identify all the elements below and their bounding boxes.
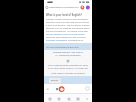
staticText: What is your level of English? <box>46 13 82 17</box>
staticText: Congratulations! Your level is C1 Advanc… <box>52 51 84 57</box>
button[interactable]: Share <box>55 95 62 102</box>
button[interactable]: Restart <box>49 78 61 83</box>
button[interactable]: More options <box>83 95 90 102</box>
button[interactable]: Tabs <box>74 95 81 102</box>
staticText: The test contains grammar and vocabulary… <box>46 18 90 43</box>
staticText: This is approximately equivalent to CEFR… <box>47 64 89 70</box>
staticText: languagelevel.com/english-test <box>49 6 79 9</box>
button[interactable]: Home <box>46 95 53 102</box>
staticText: Restart <box>51 79 59 82</box>
staticText: My test completed the level test <box>46 46 79 49</box>
button[interactable]: Search <box>65 95 72 102</box>
staticText: Time taken: 5 minutes 49 seconds <box>44 72 92 75</box>
button[interactable]: Address bar <box>44 5 92 10</box>
